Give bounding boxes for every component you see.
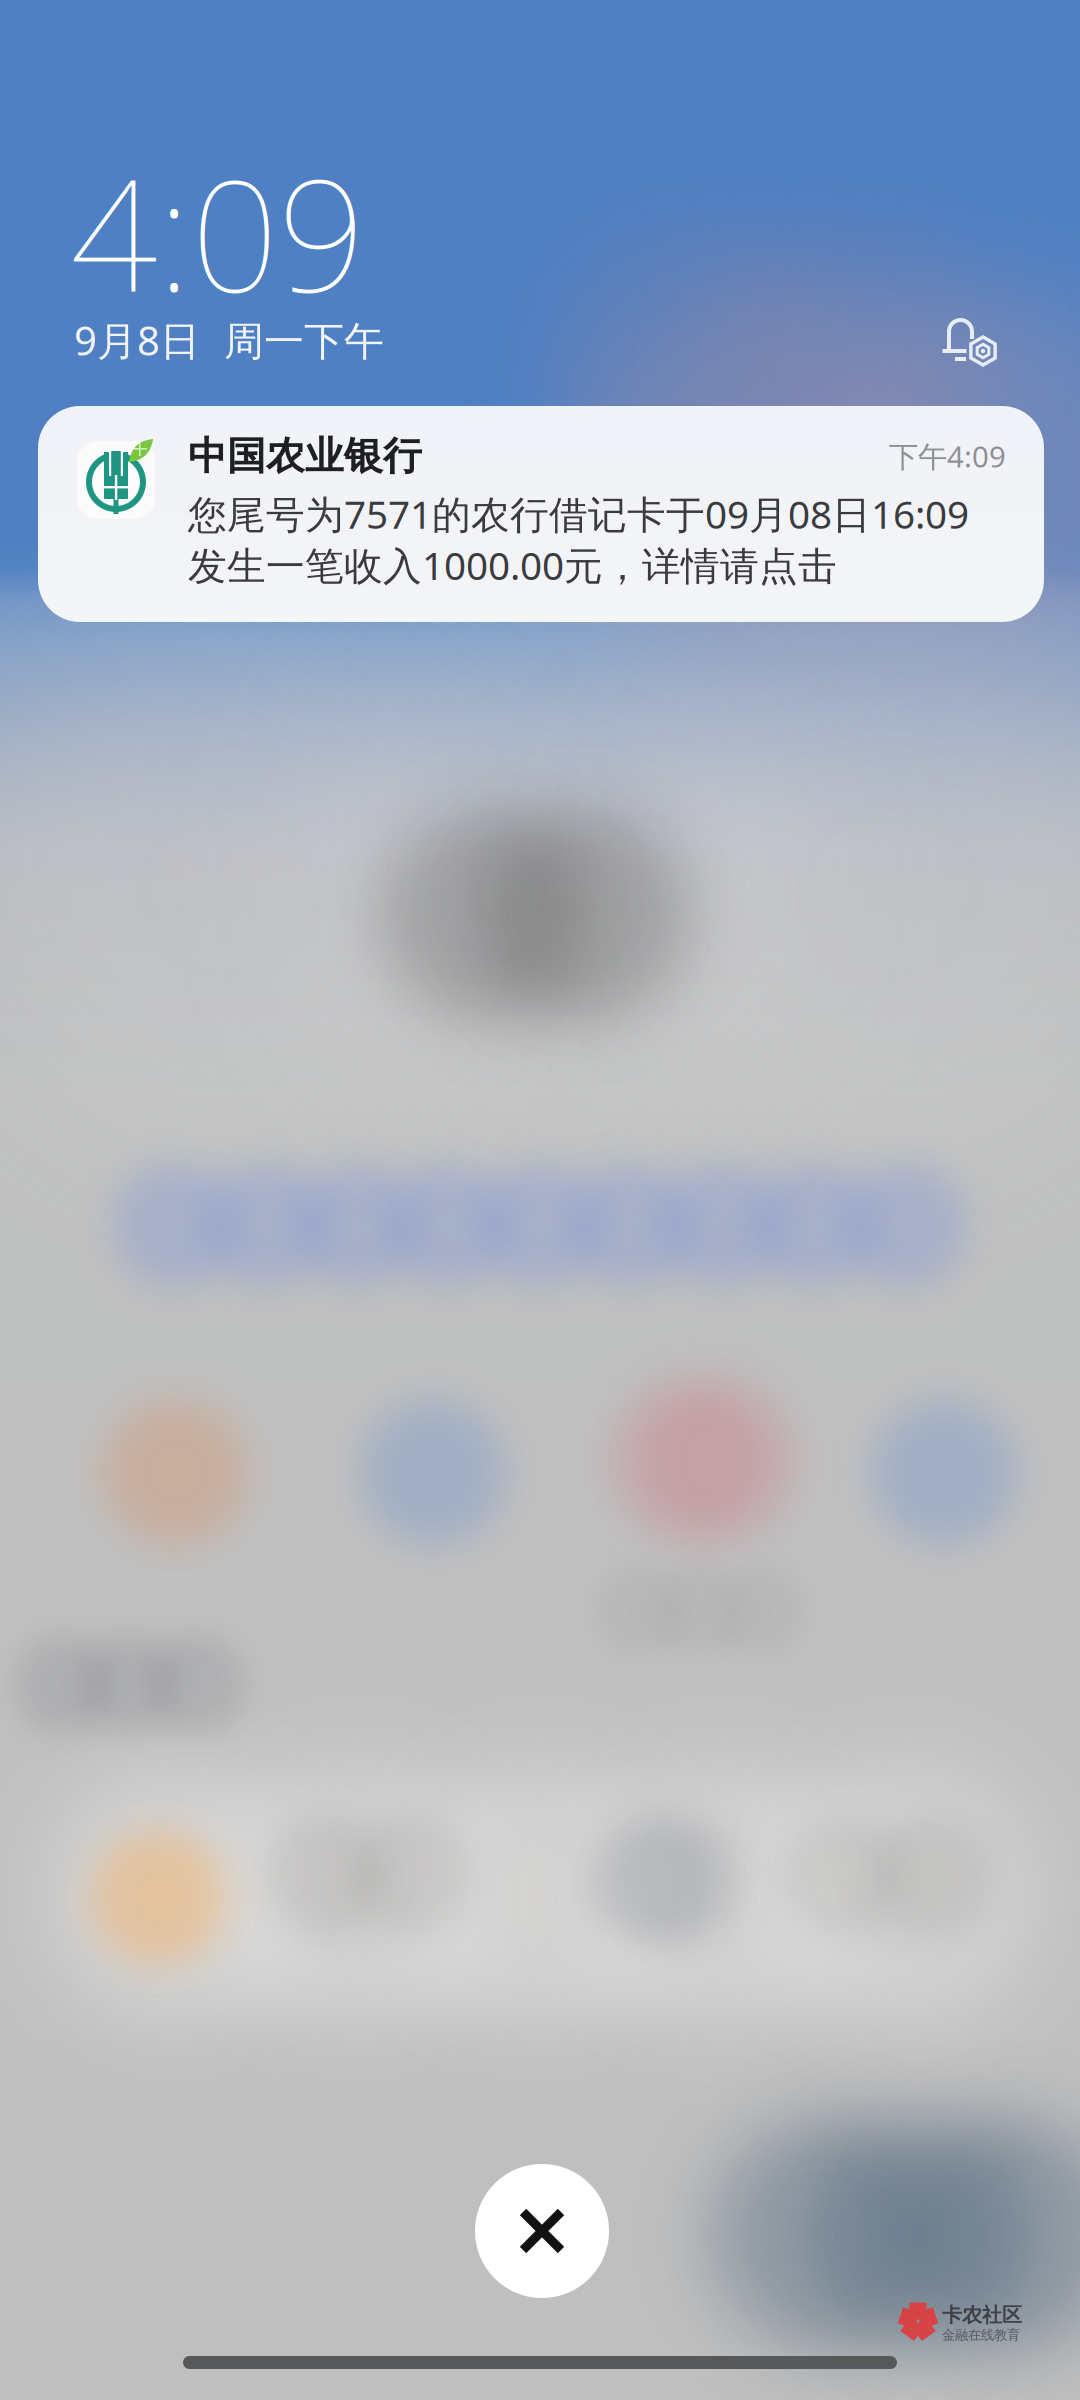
- staticText: 卡农社区: [942, 2303, 1022, 2327]
- button[interactable]: 清除全部通知: [475, 2164, 609, 2298]
- staticText: 4:09: [70, 130, 365, 334]
- staticText: 中国农业银行: [188, 432, 422, 480]
- staticText: 9月8日 周一下午: [74, 313, 384, 366]
- button[interactable]: 中国农业银行: [38, 406, 1044, 622]
- button[interactable]: 通知设置: [923, 296, 1021, 390]
- staticText: 您尾号为7571的农行借记卡于09月08日16:09发生一笔收入1000.00元…: [188, 488, 969, 591]
- staticText: 下午4:09: [889, 436, 1006, 475]
- staticText: 金融在线教育: [942, 2327, 1020, 2343]
